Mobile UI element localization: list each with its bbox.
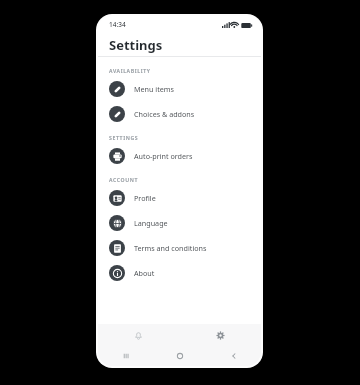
staticText: Language [134, 218, 168, 228]
button[interactable]: Menu items [98, 76, 261, 101]
button[interactable]: Orders [98, 324, 179, 346]
button[interactable]: Back [207, 346, 261, 366]
staticText: AVAILABILITY [109, 67, 151, 74]
button[interactable]: Terms and conditions [98, 235, 261, 260]
button[interactable]: Home [153, 346, 207, 366]
button[interactable]: Auto-print orders [98, 143, 261, 168]
button[interactable]: About [98, 260, 261, 285]
staticText: Terms and conditions [134, 243, 207, 253]
staticText: Settings [109, 36, 163, 54]
staticText: ACCOUNT [109, 176, 139, 183]
staticText: Profile [134, 193, 156, 203]
button[interactable]: Choices & addons [98, 101, 261, 126]
staticText: Menu items [134, 84, 174, 94]
staticText: Auto-print orders [134, 151, 193, 161]
button[interactable]: Profile [98, 185, 261, 210]
staticText: 14:34 [109, 20, 126, 29]
button[interactable]: Settings [179, 324, 261, 346]
staticText: Choices & addons [134, 109, 195, 119]
staticText: About [134, 268, 155, 278]
button[interactable]: Language [98, 210, 261, 235]
button[interactable]: Recent apps [98, 346, 153, 366]
staticText: SETTINGS [109, 134, 139, 141]
